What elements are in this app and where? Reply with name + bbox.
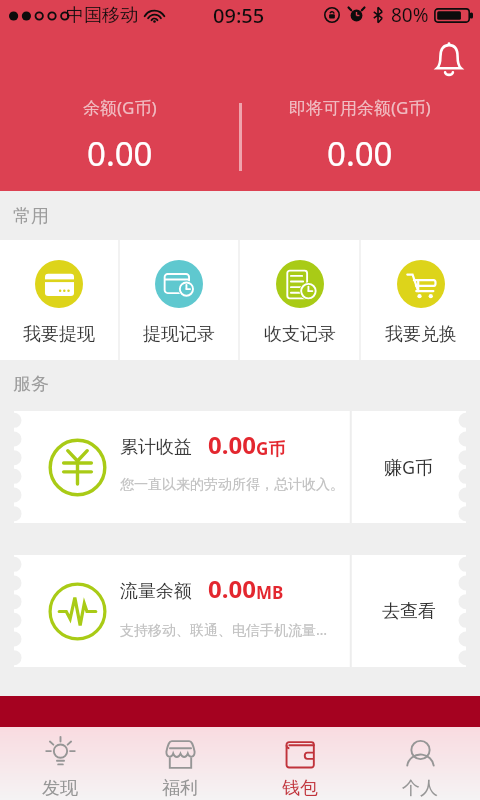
staticText: 我要兑换 [385, 323, 457, 346]
staticText: 支持移动、联通、电信手机流量… [120, 620, 328, 639]
button[interactable]: 累计收益 [14, 411, 351, 523]
button[interactable]: 去查看 [351, 555, 466, 667]
button[interactable]: 流量余额 [14, 555, 351, 667]
button[interactable]: 发现 [0, 727, 120, 800]
staticText: 常用 [13, 205, 49, 228]
staticText: 发现 [42, 777, 78, 800]
button[interactable]: 收支记录 [240, 240, 359, 360]
staticText: 0.00 [327, 131, 393, 176]
button[interactable]: 个人 [360, 727, 480, 800]
staticText: 我要提现 [23, 323, 95, 346]
staticText: 去查看 [382, 600, 436, 623]
staticText: G币 [256, 437, 286, 460]
staticText: 0.00 [87, 131, 153, 176]
staticText: 流量余额 [120, 580, 192, 603]
staticText: 余额(G币) [83, 96, 157, 119]
button[interactable]: Notifications [427, 37, 471, 81]
button[interactable]: 赚G币 [351, 411, 466, 523]
staticText: 09:55 [213, 2, 265, 29]
staticText: 0.00 [208, 572, 256, 605]
staticText: 80% [391, 2, 429, 28]
staticText: 即将可用余额(G币) [289, 96, 431, 119]
staticText: 个人 [402, 777, 438, 800]
button[interactable]: 我要兑换 [361, 240, 480, 360]
button[interactable]: 福利 [120, 727, 240, 800]
staticText: 提现记录 [143, 323, 215, 346]
staticText: 收支记录 [264, 323, 336, 346]
staticText: MB [256, 581, 284, 604]
button[interactable]: 钱包 [240, 727, 360, 800]
staticText: 您一直以来的劳动所得，总计收入。 [120, 476, 344, 494]
button[interactable]: 提现记录 [120, 240, 238, 360]
staticText: 赚G币 [384, 455, 434, 480]
staticText: 服务 [13, 373, 49, 396]
staticText: 福利 [162, 777, 198, 800]
staticText: 钱包 [282, 777, 318, 800]
staticText: 0.00 [208, 428, 256, 461]
button[interactable]: 我要提现 [0, 240, 118, 360]
staticText: 累计收益 [120, 436, 192, 459]
staticText: 中国移动 [66, 4, 138, 27]
